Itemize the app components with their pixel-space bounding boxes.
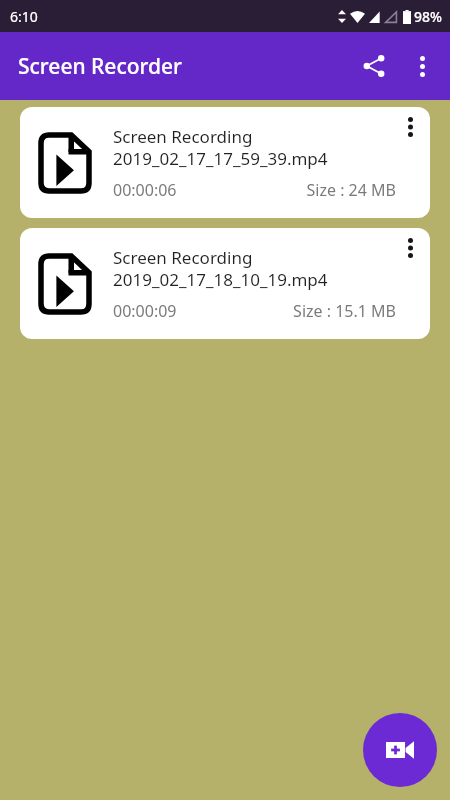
staticText: Screen Recording 2019_02_17_17_59_39.mp4: [113, 125, 328, 170]
staticText: 00:00:09: [113, 300, 177, 322]
staticText: Screen Recording 2019_02_17_18_10_19.mp4: [113, 246, 328, 291]
staticText: 98%: [414, 7, 442, 26]
staticText: Size : 15.1 MB: [293, 300, 396, 322]
button[interactable]: More options: [398, 42, 446, 90]
button[interactable]: Screen Recording 2019_02_17_17_59_39.mp4: [20, 107, 430, 218]
button[interactable]: Item options: [390, 228, 430, 268]
button[interactable]: Screen Recording 2019_02_17_18_10_19.mp4: [20, 228, 430, 339]
button[interactable]: New recording: [363, 713, 437, 787]
button[interactable]: Item options: [390, 107, 430, 147]
staticText: 00:00:06: [113, 179, 177, 201]
staticText: Screen Recorder: [18, 52, 182, 81]
staticText: 6:10: [10, 7, 38, 26]
button[interactable]: Share: [350, 42, 398, 90]
staticText: Size : 24 MB: [306, 179, 396, 201]
